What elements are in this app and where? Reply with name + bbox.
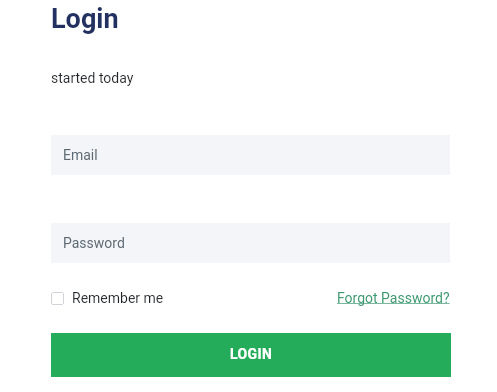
staticText: Remember me bbox=[72, 290, 164, 306]
button[interactable]: Password bbox=[51, 223, 450, 263]
button[interactable]: Remember me bbox=[51, 290, 164, 306]
other: Remember me bbox=[51, 292, 64, 305]
staticText: Email bbox=[63, 147, 98, 163]
staticText: Login bbox=[51, 3, 119, 35]
button[interactable]: Forgot Password? bbox=[337, 290, 450, 306]
button[interactable]: Email bbox=[51, 135, 450, 175]
button[interactable]: LOGIN bbox=[51, 333, 451, 377]
staticText: Password bbox=[63, 235, 125, 251]
staticText: LOGIN bbox=[230, 346, 273, 362]
staticText: started today bbox=[51, 70, 134, 86]
